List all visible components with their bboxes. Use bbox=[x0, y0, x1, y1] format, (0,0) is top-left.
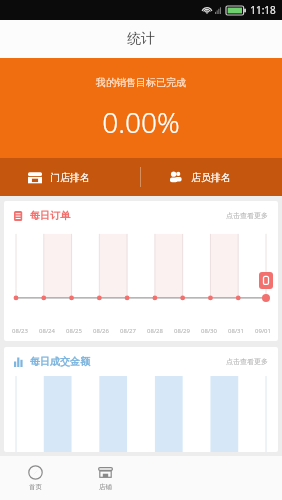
staticText: 08/28 bbox=[147, 327, 163, 335]
button[interactable]: 首页 bbox=[0, 456, 70, 500]
staticText: 首页 bbox=[29, 483, 42, 491]
staticText: 08/25 bbox=[66, 327, 82, 335]
staticText: 店员排名 bbox=[191, 171, 231, 184]
staticText: 0.00% bbox=[102, 103, 180, 141]
button[interactable]: 店铺 bbox=[70, 456, 140, 500]
staticText: 每日成交金额 bbox=[30, 355, 90, 368]
staticText: 点击查看更多 bbox=[226, 211, 268, 220]
staticText: 09/01 bbox=[255, 327, 271, 335]
button[interactable]: 门店排名 bbox=[0, 158, 140, 196]
staticText: 08/26 bbox=[93, 327, 109, 335]
staticText: 08/30 bbox=[201, 327, 217, 335]
staticText: 我的销售目标已完成 bbox=[96, 76, 186, 89]
staticText: 门店排名 bbox=[50, 171, 90, 184]
staticText: 11:18 bbox=[250, 3, 276, 17]
button[interactable]: 每日订单 bbox=[4, 201, 278, 341]
button[interactable]: 店员排名 bbox=[141, 158, 282, 196]
button[interactable]: 每日成交金额 bbox=[4, 347, 278, 452]
staticText: 08/23 bbox=[12, 327, 28, 335]
staticText: 08/24 bbox=[39, 327, 55, 335]
staticText: 点击查看更多 bbox=[226, 357, 268, 366]
staticText: 08/27 bbox=[120, 327, 136, 335]
staticText: 统计 bbox=[127, 30, 155, 48]
staticText: 每日订单 bbox=[30, 209, 70, 222]
staticText: 店铺 bbox=[99, 483, 112, 491]
staticText: 08/31 bbox=[228, 327, 244, 335]
staticText: 08/29 bbox=[174, 327, 190, 335]
